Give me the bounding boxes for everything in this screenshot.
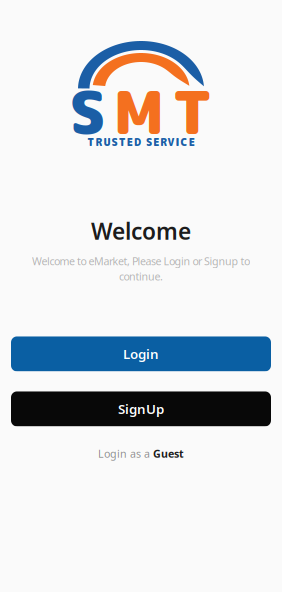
button[interactable]: Login bbox=[11, 336, 271, 371]
button[interactable]: SignUp bbox=[11, 391, 271, 426]
staticText: M bbox=[113, 71, 164, 153]
button[interactable]: Login as a bbox=[88, 442, 194, 465]
staticText: continue. bbox=[119, 269, 163, 283]
staticText: S bbox=[69, 71, 105, 153]
staticText: Welcome to eMarket, Please Login or Sign… bbox=[32, 254, 250, 268]
staticText: SignUp bbox=[118, 400, 164, 418]
staticText: TRUSTED SERVICE bbox=[87, 135, 195, 149]
staticText: Login bbox=[123, 345, 159, 363]
staticText: Welcome bbox=[91, 216, 191, 246]
staticText: Guest bbox=[153, 446, 184, 461]
staticText: Login as a bbox=[98, 446, 150, 461]
staticText: T bbox=[172, 71, 212, 153]
